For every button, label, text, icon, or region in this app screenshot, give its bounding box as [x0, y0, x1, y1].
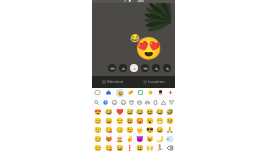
button[interactable]: Keyboard tab — [114, 88, 125, 97]
button[interactable]: 💨 — [165, 134, 175, 143]
staticText: 😋 — [105, 126, 113, 133]
button[interactable]: 😊 — [114, 125, 125, 134]
button[interactable]: 😮 — [145, 116, 155, 125]
button[interactable]: Sticker filter — [108, 64, 116, 72]
staticText: 😮 — [146, 117, 154, 124]
staticText: 😺 — [146, 135, 154, 142]
button[interactable]: Keyboard tab — [92, 88, 103, 97]
button[interactable]: 🙌 — [145, 143, 155, 152]
button[interactable]: Keyboard tab — [145, 88, 155, 97]
button[interactable]: Emoji category — [159, 97, 167, 107]
staticText: ❗ — [126, 144, 134, 151]
staticText: 😍 — [94, 108, 102, 115]
button[interactable]: 😄 — [114, 143, 125, 152]
button[interactable]: 😊 — [92, 116, 103, 125]
button[interactable]: 🌙 — [155, 134, 165, 143]
button[interactable]: 🥺 — [165, 116, 175, 125]
button[interactable]: Keyboard tab — [135, 88, 145, 97]
button[interactable]: Keyboard tab — [125, 88, 135, 97]
staticText: 😈 — [136, 135, 144, 142]
staticText: 😊 — [94, 117, 102, 124]
button[interactable]: 🧝 — [114, 134, 125, 143]
button[interactable]: 😄 — [103, 116, 114, 125]
button[interactable]: Emoji category — [119, 97, 127, 107]
staticText: 😆 — [146, 108, 154, 115]
button[interactable]: Sticker filter — [141, 64, 149, 72]
button[interactable] — [165, 143, 175, 152]
button[interactable]: Sticker filter — [130, 64, 138, 72]
button[interactable]: 😋 — [103, 143, 114, 152]
button[interactable]: 😅 — [125, 107, 135, 116]
staticText: 😌 — [116, 117, 124, 124]
staticText: 😊 — [94, 135, 102, 142]
staticText: 🤣 — [166, 108, 174, 115]
button[interactable]: Emoji category — [135, 97, 143, 107]
staticText: 😋 — [105, 144, 113, 151]
button[interactable]: 😊 — [92, 134, 103, 143]
button[interactable]: Sticker filter — [152, 64, 160, 72]
staticText: 😂 — [156, 108, 164, 115]
button[interactable]: Keyboard tab — [103, 88, 114, 97]
staticText: 🧝 — [116, 135, 124, 142]
staticText: Mention — [107, 79, 124, 85]
button[interactable]: 🏃 — [155, 143, 165, 152]
staticText: 😂 — [105, 108, 113, 115]
button[interactable]: 😡 — [135, 116, 145, 125]
button[interactable]: Location — [133, 76, 175, 88]
button[interactable]: Emoji category — [101, 97, 110, 107]
staticText: 🥺 — [166, 117, 174, 124]
staticText: 😄 — [105, 117, 113, 124]
button[interactable]: 😂 — [155, 107, 165, 116]
button[interactable]: Emoji category — [151, 97, 159, 107]
button[interactable]: Emoji category — [143, 97, 151, 107]
button[interactable]: ✌️ — [125, 134, 135, 143]
button[interactable]: 😺 — [145, 134, 155, 143]
staticText: 😃 — [126, 117, 134, 124]
staticText: 😉 — [126, 126, 134, 133]
button[interactable]: 😃 — [135, 143, 145, 152]
staticText: 😎 — [146, 126, 154, 133]
button[interactable]: ❤️ — [114, 107, 125, 116]
staticText: 🌙 — [156, 135, 164, 142]
button[interactable]: 🙂 — [92, 125, 103, 134]
button[interactable]: 😂 — [135, 107, 145, 116]
staticText: 😊 — [94, 144, 102, 151]
staticText: 😊 — [116, 126, 124, 133]
staticText: 🙂 — [94, 126, 102, 133]
button[interactable]: 😆 — [145, 107, 155, 116]
button[interactable]: 😈 — [135, 134, 145, 143]
button[interactable]: 😌 — [114, 116, 125, 125]
staticText: 😃 — [136, 144, 144, 151]
button[interactable]: 🤟 — [135, 125, 145, 134]
button[interactable]: 😎 — [145, 125, 155, 134]
button[interactable]: Emoji category — [127, 97, 135, 107]
button[interactable]: ❗ — [125, 143, 135, 152]
button[interactable]: Emoji category — [167, 97, 175, 107]
staticText: 😂 — [130, 34, 140, 43]
button[interactable]: Keyboard tab — [155, 88, 165, 97]
button[interactable]: 🤣 — [165, 107, 175, 116]
button[interactable]: Sticker filter — [119, 64, 127, 72]
button[interactable]: 🙏 — [165, 125, 175, 134]
button[interactable]: 😁 — [155, 116, 165, 125]
button[interactable]: 😉 — [125, 125, 135, 134]
staticText: 💨 — [166, 135, 174, 142]
staticText: 🙏 — [166, 126, 174, 133]
button[interactable]: 😂 — [103, 107, 114, 116]
staticText: ❤️ — [116, 108, 124, 115]
button[interactable]: Emoji category — [110, 97, 119, 107]
staticText: 😂 — [136, 108, 144, 115]
button[interactable]: Keyboard tab — [165, 88, 175, 97]
button[interactable]: Sticker filter — [163, 64, 171, 72]
button[interactable]: 😻 — [103, 134, 114, 143]
button[interactable]: Emoji category — [92, 97, 101, 107]
button[interactable]: 😄 — [155, 125, 165, 134]
button[interactable]: 😍 — [92, 107, 103, 116]
staticText: 😁 — [156, 117, 164, 124]
button[interactable]: 😋 — [103, 125, 114, 134]
button[interactable]: 😃 — [125, 116, 135, 125]
staticText: 😡 — [136, 117, 144, 124]
button[interactable]: Backspace — [164, 142, 175, 152]
button[interactable]: 😊 — [92, 143, 103, 152]
button[interactable]: Mention — [92, 76, 133, 88]
